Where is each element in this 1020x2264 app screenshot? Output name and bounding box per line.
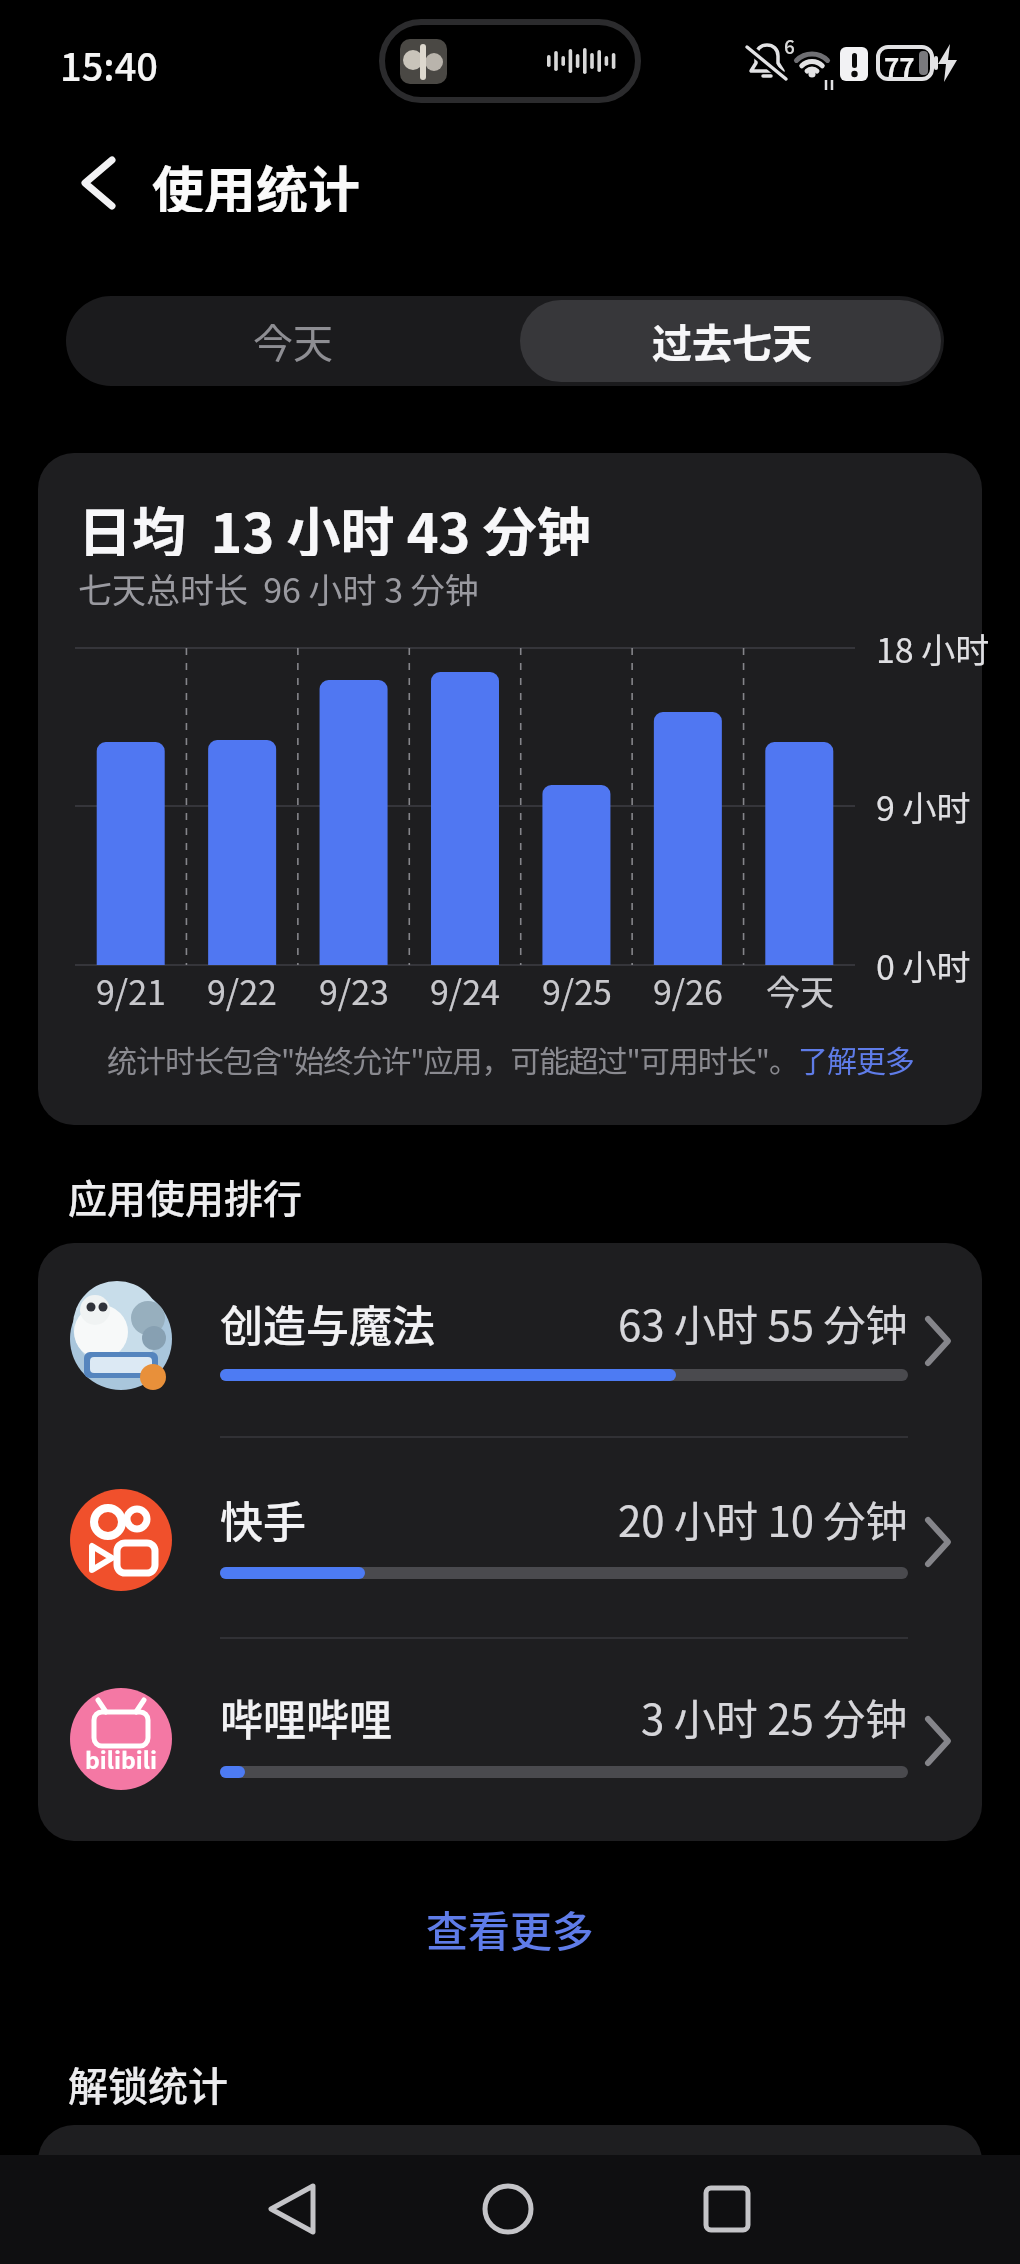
staticText: 使用统计 <box>152 150 361 212</box>
staticText: 创造与魔法 <box>220 1292 435 1352</box>
staticText: 3 小时 25 分钟 <box>641 1686 908 1746</box>
staticText: 解锁统计 <box>68 2055 228 2111</box>
staticText: 9/26 <box>653 966 723 1015</box>
button[interactable] <box>62 148 142 218</box>
staticText: 9/25 <box>542 966 612 1015</box>
staticText: 9/23 <box>319 966 389 1015</box>
staticText: bilibili <box>85 1742 158 1775</box>
staticText: 日均 13 小时 43 分钟 <box>78 490 591 556</box>
staticText: 9/24 <box>430 966 500 1015</box>
staticText: 9/21 <box>96 966 166 1015</box>
staticText: 9/22 <box>207 966 277 1015</box>
staticText: 20 小时 10 分钟 <box>618 1488 908 1548</box>
button[interactable] <box>38 1438 982 1638</box>
staticText: 15:40 <box>60 37 158 92</box>
staticText: 77 <box>884 47 915 79</box>
staticText: 哔哩哔哩 <box>220 1686 392 1746</box>
button[interactable]: 过去七天 <box>519 300 944 382</box>
staticText: 63 小时 55 分钟 <box>618 1292 908 1352</box>
staticText: 应用使用排行 <box>68 1168 303 1224</box>
staticText: 快手 <box>220 1488 306 1548</box>
staticText: 18 小时 <box>876 624 990 673</box>
staticText: 今天 <box>766 966 834 1015</box>
button[interactable] <box>520 300 941 382</box>
staticText: 9 小时 <box>876 782 971 831</box>
button[interactable] <box>66 296 944 386</box>
button[interactable] <box>620 2155 820 2264</box>
button[interactable] <box>38 1243 982 1438</box>
staticText: 统计时长包含"始终允许"应用，可能超过"可用时长"。了解更多 <box>107 1037 914 1080</box>
button[interactable] <box>200 2155 400 2264</box>
staticText: 七天总时长 96 小时 3 分钟 <box>78 564 479 613</box>
button[interactable] <box>410 2155 610 2264</box>
staticText: 0 小时 <box>876 941 971 990</box>
button[interactable] <box>38 1638 982 1841</box>
button[interactable]: 查看更多 <box>0 1898 1020 1954</box>
staticText: 6 <box>784 32 795 58</box>
staticText: 过去七天 <box>652 312 812 370</box>
staticText: 查看更多 <box>426 1898 595 1954</box>
button[interactable]: 今天 <box>66 296 520 386</box>
staticText: 今天 <box>253 312 333 370</box>
